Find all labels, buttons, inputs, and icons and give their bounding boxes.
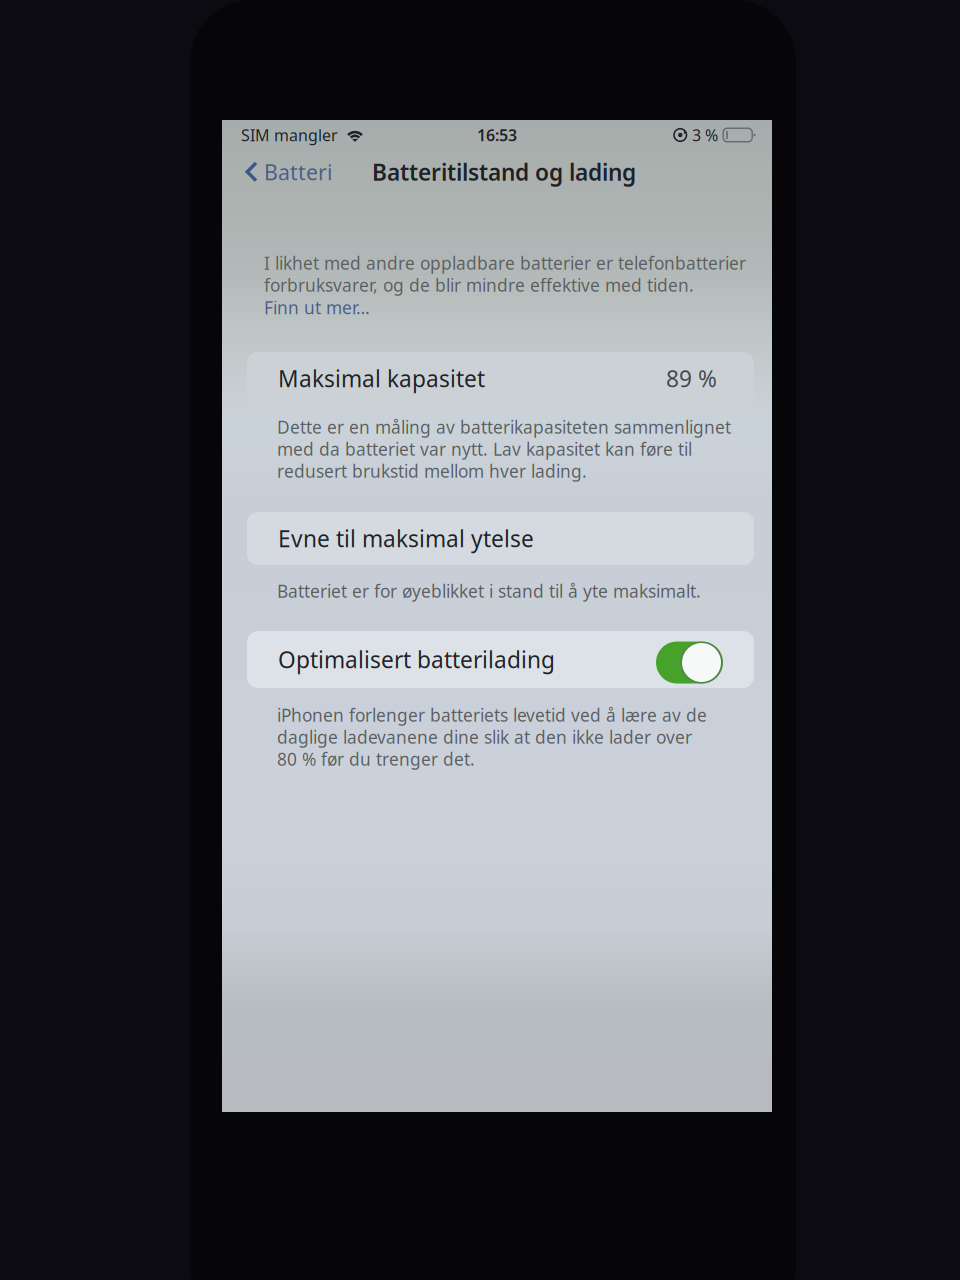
button[interactable]: Evne til maksimal ytelse bbox=[247, 512, 754, 565]
staticText: I likhet med andre oppladbare batterier … bbox=[264, 251, 746, 274]
button[interactable]: Batteri bbox=[222, 151, 343, 193]
staticText: daglige ladevanene dine slik at den ikke… bbox=[277, 725, 692, 748]
staticText: 80 % før du trenger det. bbox=[277, 747, 475, 770]
staticText: SIM mangler bbox=[241, 124, 338, 146]
staticText: med da batteriet var nytt. Lav kapasitet… bbox=[277, 437, 692, 460]
staticText: Finn ut mer… bbox=[264, 296, 370, 319]
staticText: Batteriet er for øyeblikket i stand til … bbox=[277, 579, 701, 602]
staticText: redusert brukstid mellom hver lading. bbox=[277, 459, 587, 482]
button[interactable]: Optimalisert batterilading, på bbox=[656, 635, 723, 683]
staticText: 16:53 bbox=[477, 124, 517, 146]
button[interactable]: Optimalisert batterilading bbox=[247, 631, 754, 688]
staticText: Batteri bbox=[264, 158, 333, 186]
staticText: Maksimal kapasitet bbox=[278, 363, 485, 394]
staticText: forbruksvarer, og de blir mindre effekti… bbox=[264, 273, 694, 296]
staticText: iPhonen forlenger batteriets levetid ved… bbox=[277, 703, 707, 726]
staticText: Evne til maksimal ytelse bbox=[278, 523, 534, 554]
staticText: Batteritilstand og lading bbox=[372, 157, 636, 187]
button[interactable]: Maksimal kapasitet bbox=[247, 352, 754, 405]
staticText: Optimalisert batterilading bbox=[278, 644, 555, 675]
staticText: 89 % bbox=[666, 363, 717, 394]
staticText: 3 % bbox=[692, 124, 718, 146]
staticText: Dette er en måling av batterikapasiteten… bbox=[277, 415, 731, 438]
button[interactable]: Finn ut mer… bbox=[264, 296, 370, 319]
